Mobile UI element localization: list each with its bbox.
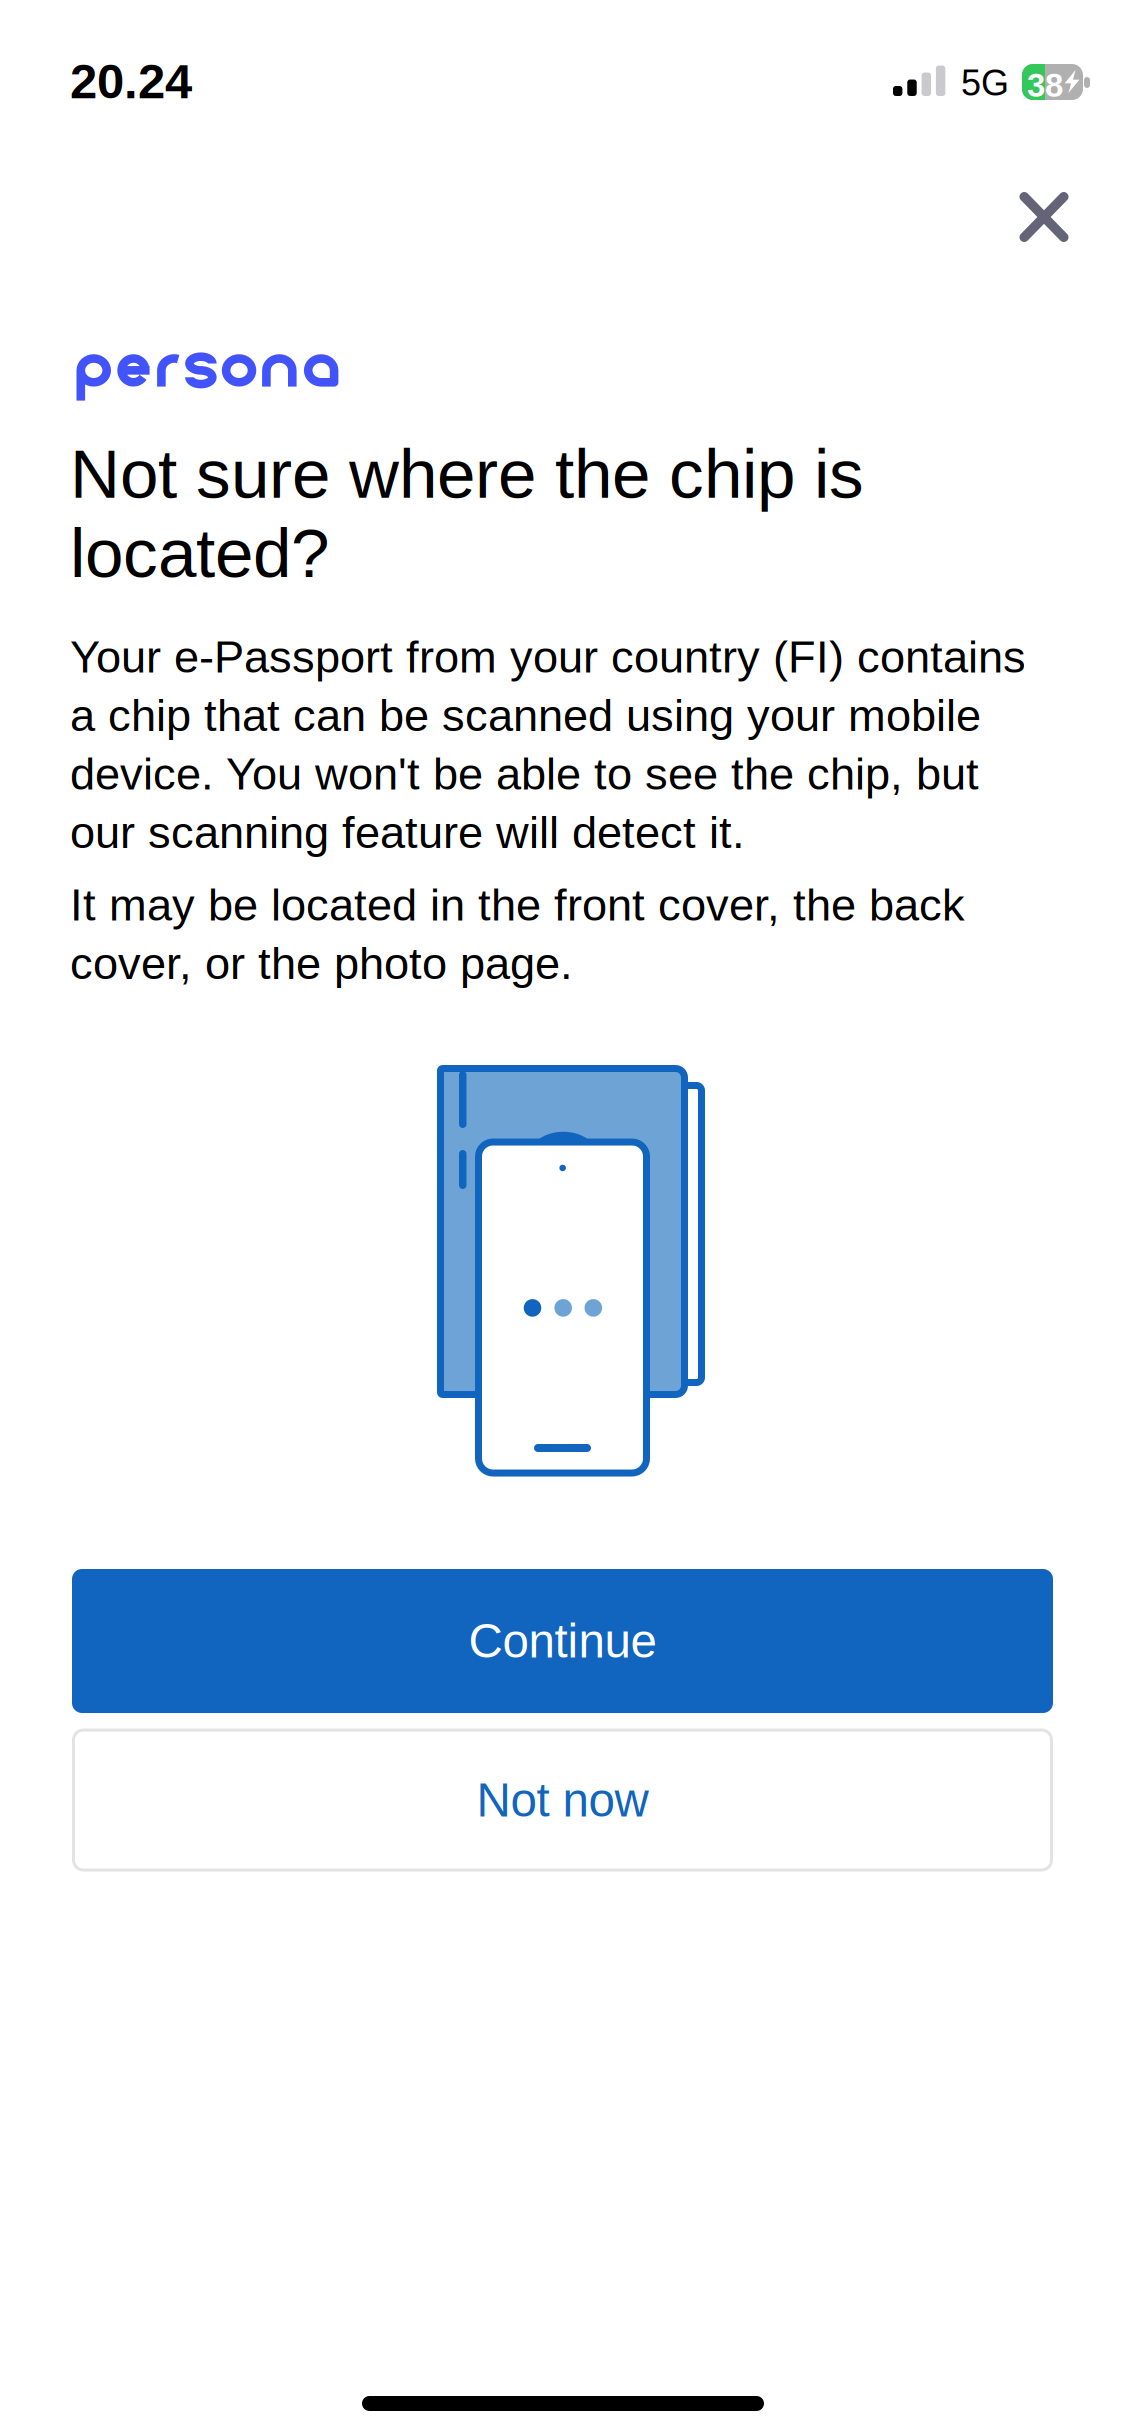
button[interactable]: Close — [988, 161, 1100, 273]
staticText: 5G — [961, 63, 1009, 103]
staticText: Not now — [476, 1773, 648, 1827]
staticText: 20.24 — [70, 54, 192, 109]
staticText: It may be located in the front cover, th… — [70, 880, 965, 989]
button[interactable]: Continue — [72, 1569, 1053, 1713]
button[interactable]: Not now — [72, 1728, 1053, 1871]
staticText: Continue — [468, 1614, 656, 1668]
staticText: Your e-Passport from your country (FI) c… — [70, 632, 1026, 858]
staticText: Not sure where the chip is located? — [70, 435, 864, 592]
staticText: 38 — [1027, 67, 1063, 104]
